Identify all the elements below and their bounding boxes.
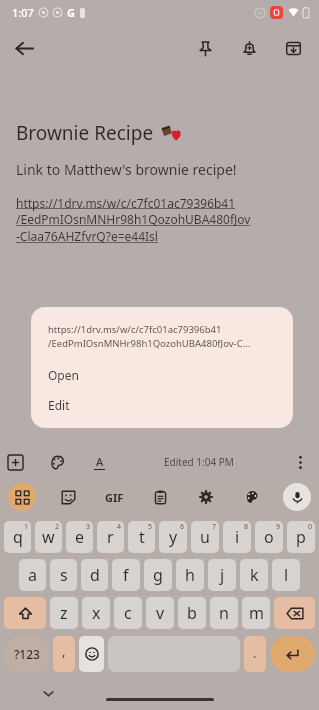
staticText: 5: [148, 522, 153, 532]
button[interactable]: GIF: [99, 482, 129, 512]
button[interactable]: Backspace: [274, 597, 315, 629]
button[interactable]: q: [4, 521, 31, 553]
button[interactable]: Stickers: [53, 482, 83, 512]
button[interactable]: Clipboard: [145, 482, 175, 512]
button[interactable]: g: [144, 559, 172, 591]
staticText: https://1drv.ms/w/c/c7fc01ac79396b41 /Ee…: [16, 195, 251, 245]
button[interactable]: a: [19, 559, 46, 591]
button[interactable]: y: [159, 521, 187, 553]
button[interactable]: d: [81, 559, 108, 591]
button[interactable]: e: [66, 521, 93, 553]
staticText: h: [185, 564, 195, 586]
staticText: n: [219, 602, 229, 624]
staticText: a: [28, 564, 37, 586]
button[interactable]: s: [50, 559, 77, 591]
staticText: d: [90, 564, 100, 586]
staticText: 2: [55, 522, 60, 532]
button[interactable]: Archive: [271, 26, 315, 70]
staticText: z: [60, 602, 68, 624]
staticText: i: [235, 526, 240, 548]
staticText: .: [253, 644, 257, 662]
button[interactable]: c: [114, 597, 142, 629]
button[interactable]: Themes: [237, 482, 267, 512]
button[interactable]: o: [255, 521, 283, 553]
button[interactable]: i: [223, 521, 251, 553]
staticText: 0: [308, 522, 313, 532]
staticText: 7: [212, 522, 217, 532]
button[interactable]: Edit: [31, 390, 293, 420]
button[interactable]: u: [191, 521, 219, 553]
staticText: GIF: [105, 490, 124, 505]
button[interactable]: Settings: [191, 482, 221, 512]
staticText: k: [250, 564, 259, 586]
staticText: ?123: [14, 646, 40, 662]
button[interactable]: Back: [0, 24, 48, 72]
staticText: w: [42, 526, 55, 548]
staticText: f: [123, 564, 129, 586]
button[interactable]: Toolbar: [8, 483, 36, 511]
staticText: 1:07: [12, 5, 34, 20]
button[interactable]: Pin: [183, 26, 227, 70]
staticText: Open: [48, 367, 79, 383]
button[interactable]: m: [242, 597, 270, 629]
staticText: 1: [24, 522, 29, 532]
button[interactable]: n: [210, 597, 238, 629]
staticText: 8: [244, 522, 249, 532]
button[interactable]: Enter: [270, 636, 315, 672]
staticText: o: [264, 526, 274, 548]
button[interactable]: b: [178, 597, 206, 629]
staticText: t: [139, 526, 145, 548]
staticText: Edit: [48, 397, 70, 413]
button[interactable]: More options: [285, 448, 315, 476]
staticText: 4: [117, 522, 122, 532]
button[interactable]: Hide keyboard: [36, 681, 60, 705]
button[interactable]: Voice input: [283, 483, 311, 511]
button[interactable]: p: [287, 521, 315, 553]
staticText: A: [96, 454, 104, 469]
staticText: b: [187, 602, 197, 624]
staticText: s: [60, 564, 68, 586]
staticText: p: [296, 526, 306, 548]
button[interactable]: Open: [31, 360, 293, 390]
staticText: g: [153, 564, 163, 586]
button[interactable]: h: [176, 559, 204, 591]
button[interactable]: t: [128, 521, 155, 553]
button[interactable]: j: [208, 559, 236, 591]
button[interactable]: Reminder: [227, 26, 271, 70]
button[interactable]: Emoji: [79, 636, 104, 672]
button[interactable]: Color palette: [42, 448, 72, 476]
button[interactable]: f: [112, 559, 140, 591]
staticText: m: [249, 602, 264, 624]
button[interactable]: k: [240, 559, 268, 591]
staticText: x: [92, 602, 101, 624]
button[interactable]: Add: [0, 448, 30, 476]
button[interactable]: r: [97, 521, 124, 553]
button[interactable]: x: [82, 597, 110, 629]
button[interactable]: z: [50, 597, 78, 629]
staticText: Link to Matthew's brownie recipe!: [16, 160, 237, 179]
staticText: 9: [276, 522, 281, 532]
staticText: j: [220, 564, 225, 586]
button[interactable]: v: [146, 597, 174, 629]
staticText: Edited 1:04 PM: [164, 455, 234, 469]
staticText: r: [107, 526, 114, 548]
staticText: v: [156, 602, 165, 624]
button[interactable]: .: [244, 636, 266, 672]
button[interactable]: w: [35, 521, 62, 553]
button[interactable]: Formatting: [84, 448, 114, 476]
staticText: q: [13, 526, 23, 548]
button[interactable]: Shift: [4, 597, 46, 629]
staticText: l: [284, 564, 289, 586]
staticText: y: [169, 526, 178, 548]
staticText: u: [200, 526, 210, 548]
staticText: ,: [62, 642, 66, 660]
button[interactable]: l: [272, 559, 300, 591]
button[interactable]: ,: [53, 636, 75, 672]
staticText: e: [75, 526, 85, 548]
staticText: https://1drv.ms/w/c/c7fc01ac79396b41 /Ee…: [48, 323, 251, 350]
button[interactable]: ?123: [4, 636, 49, 672]
staticText: 6: [180, 522, 185, 532]
staticText: c: [124, 602, 132, 624]
staticText: 3: [86, 522, 91, 532]
